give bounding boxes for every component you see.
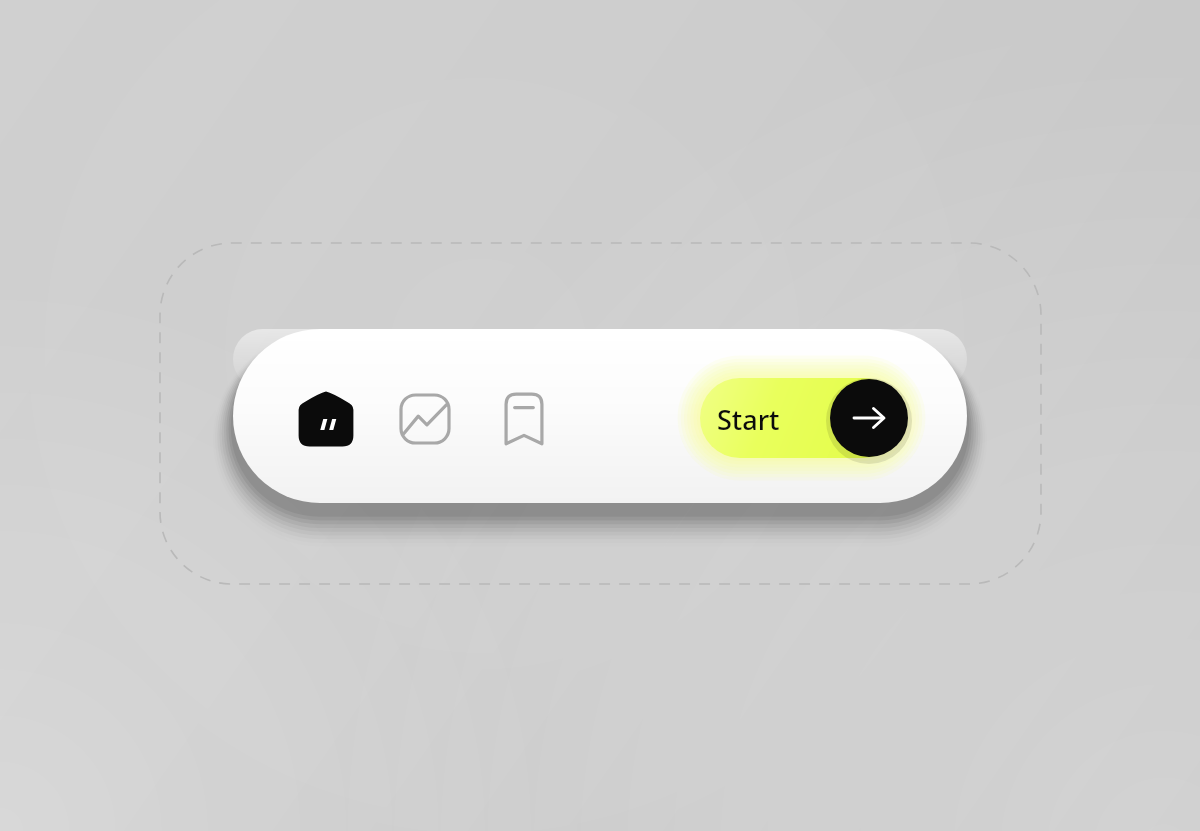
button[interactable]: Start bbox=[688, 366, 918, 470]
staticText: Start bbox=[717, 401, 817, 441]
button[interactable]: Bookmarks bbox=[496, 388, 552, 450]
button[interactable]: Statistics bbox=[396, 390, 454, 448]
button[interactable]: Home bbox=[293, 386, 359, 452]
